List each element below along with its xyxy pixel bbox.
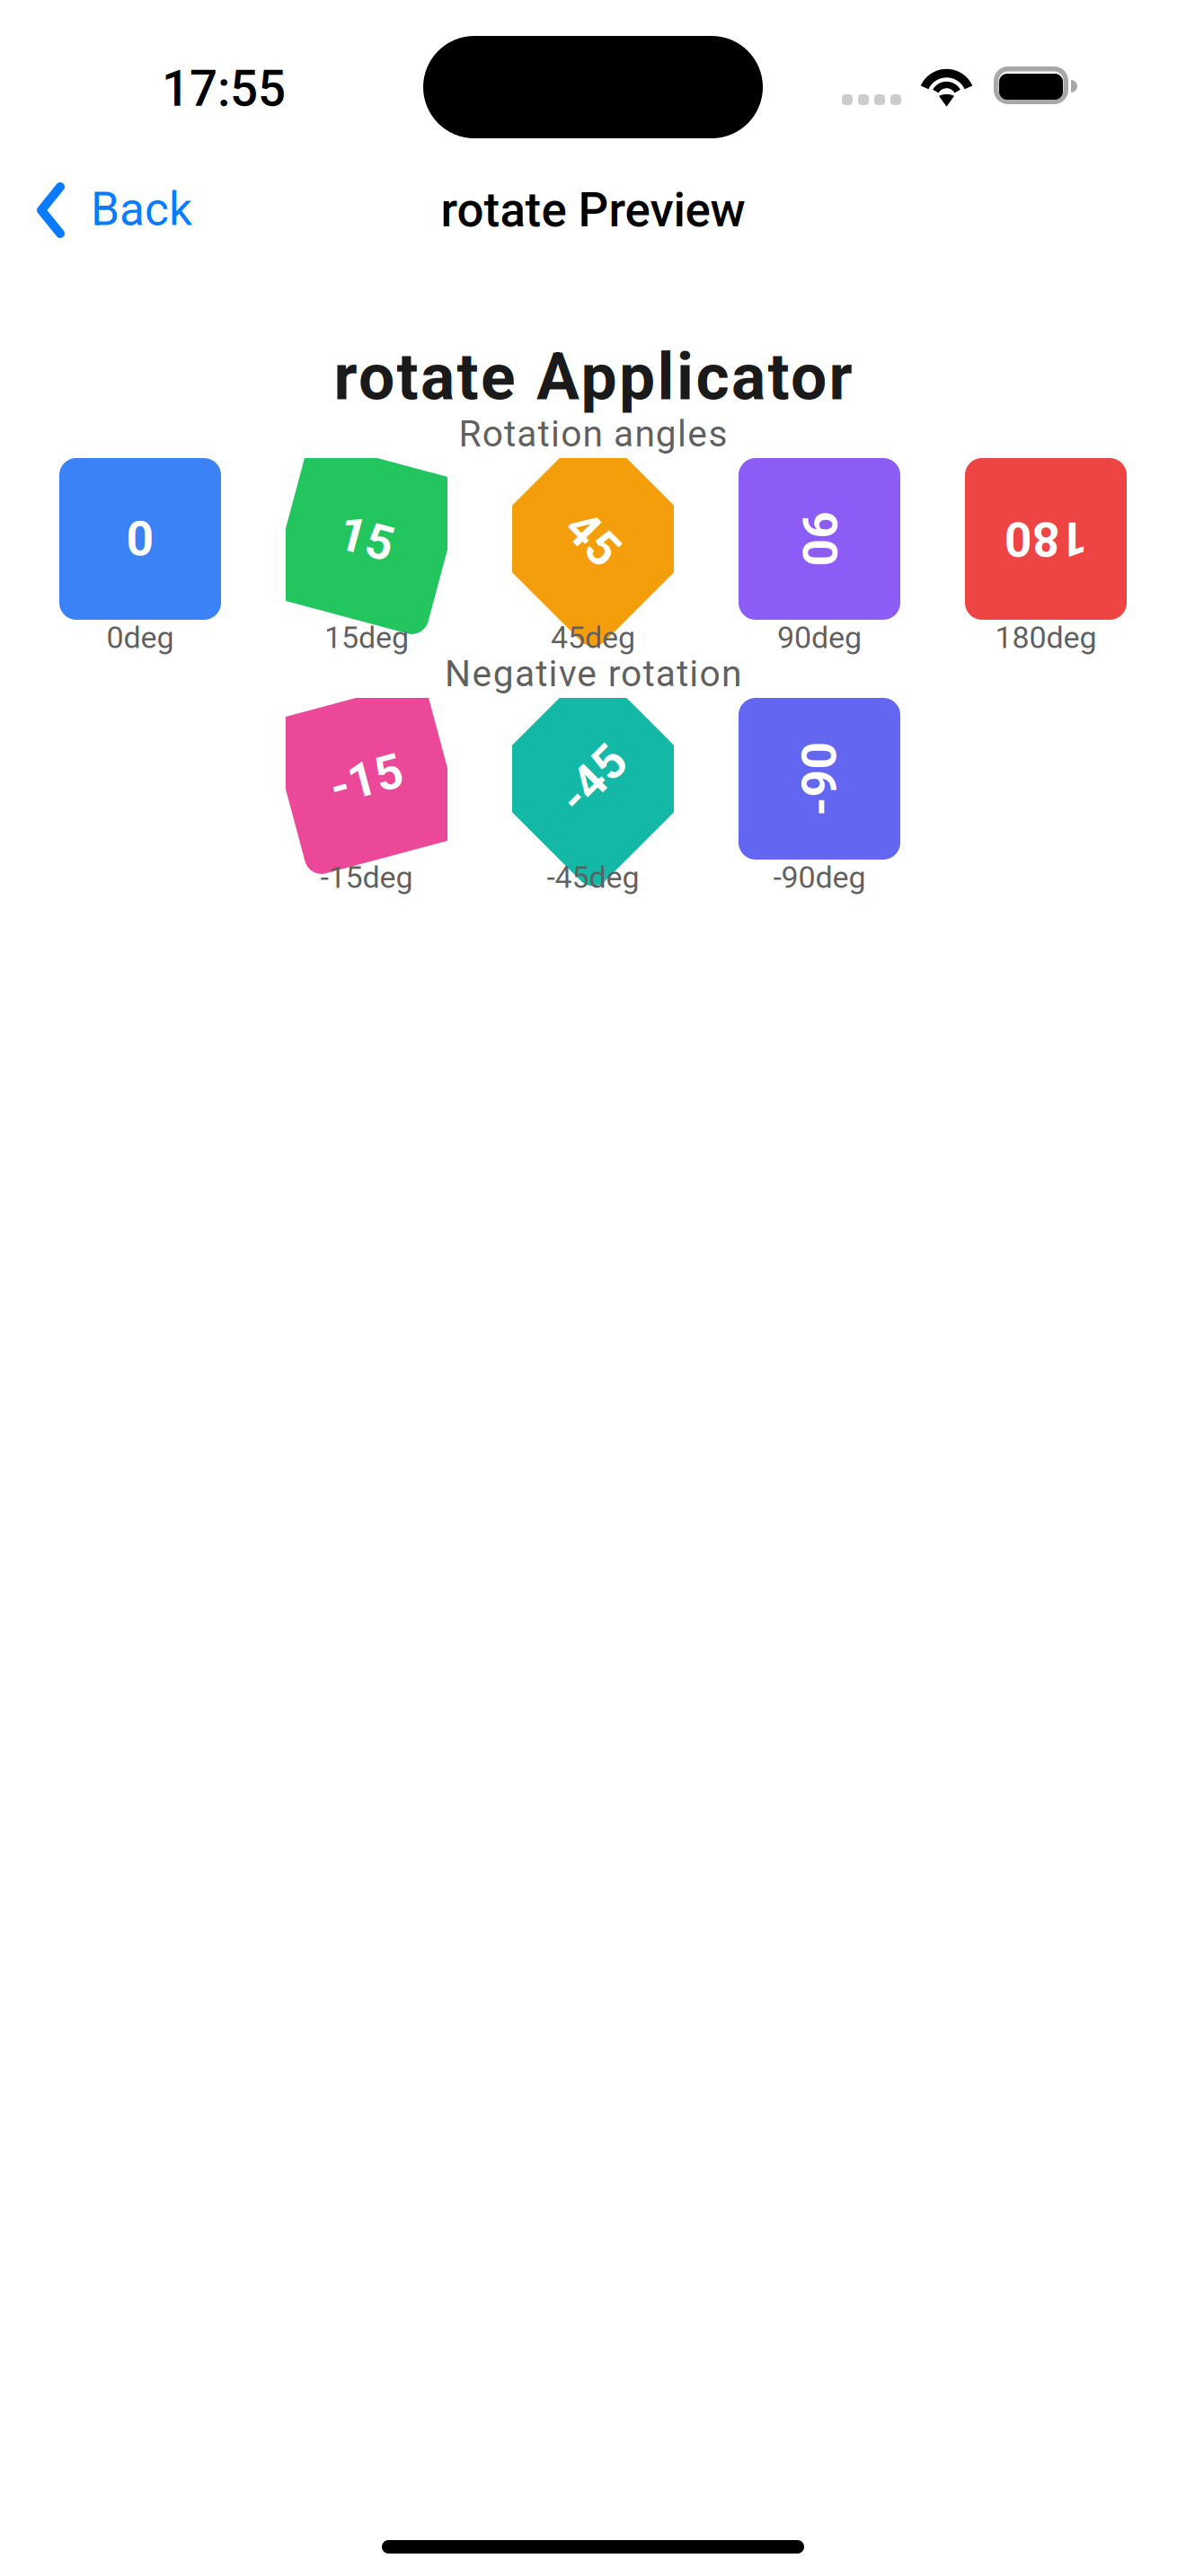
staticText: Negative rotation xyxy=(445,652,741,695)
staticText: 90deg xyxy=(777,620,862,656)
staticText: 45deg xyxy=(551,620,635,656)
staticText: 15deg xyxy=(324,620,409,656)
staticText: -15deg xyxy=(320,860,413,895)
staticText: 180deg xyxy=(995,620,1097,656)
staticText: 45 xyxy=(565,511,621,567)
staticText: -45 xyxy=(556,751,630,807)
button[interactable]: Back xyxy=(0,163,219,257)
staticText: -90 xyxy=(782,751,857,807)
staticText: -45deg xyxy=(547,860,639,895)
staticText: -90deg xyxy=(773,860,866,895)
staticText: 0deg xyxy=(106,620,174,656)
staticText: rotate Applicator xyxy=(334,340,852,415)
staticText: -15 xyxy=(329,751,404,807)
staticText: 90 xyxy=(792,511,847,567)
staticText: 0 xyxy=(126,511,154,567)
staticText: Back xyxy=(91,182,192,236)
staticText: rotate Preview xyxy=(441,182,745,238)
staticText: Rotation angles xyxy=(459,412,727,455)
staticText: 15 xyxy=(339,511,394,567)
staticText: 180 xyxy=(1004,511,1088,567)
staticText: 17:55 xyxy=(162,60,286,118)
